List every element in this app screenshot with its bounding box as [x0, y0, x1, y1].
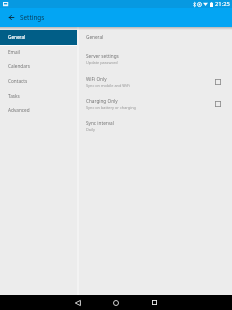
staticText: Sync on mobile and WiFi: [86, 83, 130, 88]
staticText: Server settings: [86, 53, 119, 59]
button[interactable]: Calendars: [0, 59, 77, 74]
staticText: Daily: [86, 127, 95, 132]
button[interactable]: Tasks: [0, 89, 77, 104]
staticText: Settings: [20, 13, 45, 22]
button[interactable]: WiFi Only: [79, 76, 232, 98]
staticText: General: [8, 34, 26, 40]
button[interactable]: Back: [2, 8, 21, 27]
button[interactable]: Contacts: [0, 74, 77, 89]
button[interactable]: General: [0, 30, 77, 45]
staticText: Advanced: [8, 107, 30, 113]
button[interactable]: Email: [0, 45, 77, 60]
staticText: Calendars: [8, 63, 31, 69]
staticText: Sync interval: [86, 120, 114, 126]
staticText: Email: [8, 49, 21, 55]
button[interactable]: Sync interval: [79, 120, 232, 142]
button[interactable]: Advanced: [0, 103, 77, 118]
staticText: Update password: [86, 60, 118, 65]
staticText: Sync on battery or charging: [86, 105, 136, 110]
button[interactable]: Recent apps: [135, 295, 173, 310]
button[interactable]: Home: [97, 295, 135, 310]
staticText: WiFi Only: [86, 76, 107, 82]
button[interactable]: Server settings: [79, 53, 232, 75]
staticText: Tasks: [8, 93, 20, 99]
staticText: Contacts: [8, 78, 28, 84]
staticText: 21:25: [215, 0, 230, 8]
staticText: Charging Only: [86, 98, 118, 104]
staticText: General: [86, 34, 104, 40]
button[interactable]: Back: [59, 295, 97, 310]
button[interactable]: Charging Only: [79, 98, 232, 120]
